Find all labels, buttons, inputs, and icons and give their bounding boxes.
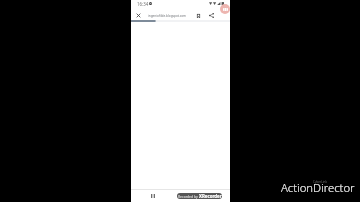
staticText: XRecorder [199,193,222,199]
staticText: Recorded by [178,194,199,199]
staticText: 16:34 [137,1,149,7]
button[interactable]: Close [132,10,144,21]
button[interactable]: Pause [148,191,158,201]
staticText: ingeniofilde.blogspot.com [148,14,187,18]
button[interactable]: Bookmark [193,10,203,21]
button[interactable]: Screen recorder [220,4,230,14]
staticText: CyberLink [313,180,328,184]
button[interactable]: Share [206,10,216,21]
button[interactable]: Recorded by [177,193,222,199]
button[interactable]: ingeniofilde.blogspot.com [148,10,194,21]
staticText: ActionDirector [281,180,355,195]
